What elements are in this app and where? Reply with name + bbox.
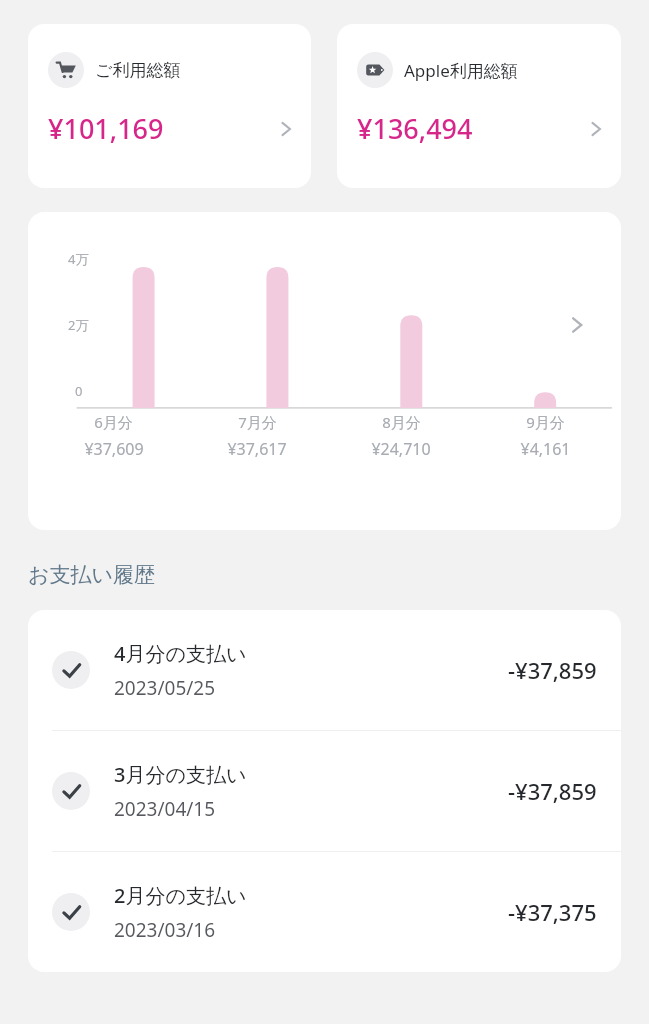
staticText: ¥4,161 [520, 438, 571, 460]
staticText: ¥37,609 [84, 438, 144, 460]
staticText: 2万 [68, 316, 89, 334]
staticText: 2023/04/15 [114, 796, 216, 822]
staticText: 2023/03/16 [114, 917, 216, 943]
button[interactable]: 4万 [28, 212, 621, 530]
staticText: 3月分の支払い [114, 761, 247, 788]
staticText: 2023/05/25 [114, 675, 216, 701]
staticText: ¥37,617 [227, 438, 287, 460]
staticText: ¥136,494 [357, 110, 473, 147]
staticText: ¥101,169 [48, 110, 164, 147]
staticText: 0 [75, 382, 83, 400]
button[interactable]: ご利用総額 [28, 24, 311, 188]
staticText: -¥37,859 [508, 776, 597, 806]
staticText: 7月分 [238, 412, 277, 432]
staticText: お支払い履歴 [28, 562, 155, 588]
button[interactable]: 4月分の支払い [28, 610, 621, 730]
staticText: 9月分 [526, 412, 565, 432]
staticText: Apple利用総額 [404, 59, 518, 82]
staticText: ¥24,710 [371, 438, 431, 460]
other: 詳細を見る [562, 310, 592, 340]
staticText: 4月分の支払い [114, 640, 247, 667]
button[interactable]: Apple利用総額 [337, 24, 621, 188]
staticText: ご利用総額 [95, 60, 181, 81]
staticText: 8月分 [382, 412, 421, 432]
staticText: -¥37,375 [508, 897, 597, 927]
button[interactable]: 2月分の支払い [28, 852, 621, 972]
button[interactable]: 3月分の支払い [28, 731, 621, 851]
staticText: 6月分 [94, 412, 133, 432]
staticText: -¥37,859 [508, 655, 597, 685]
staticText: 2月分の支払い [114, 882, 247, 909]
staticText: 4万 [68, 250, 89, 268]
